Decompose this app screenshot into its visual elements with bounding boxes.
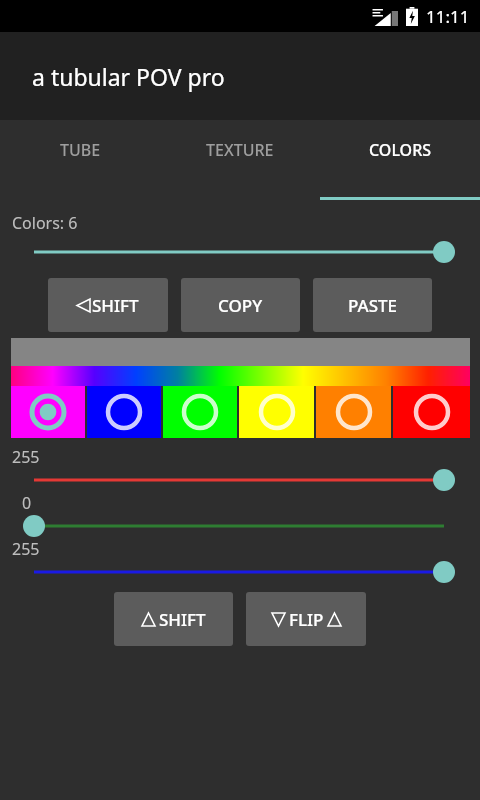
staticText: 11:11 (426, 5, 470, 28)
staticText: PASTE (348, 294, 398, 317)
button[interactable]: FLIP (246, 592, 366, 646)
button[interactable]: Color swatch 6 (393, 386, 470, 438)
button[interactable]: Color swatch 5 (316, 386, 391, 438)
staticText: SHIFT (92, 294, 139, 317)
staticText: 0 (22, 492, 32, 514)
button[interactable]: TUBE (0, 120, 160, 200)
staticText: COPY (218, 294, 263, 317)
button[interactable]: Color swatch 3 (163, 386, 237, 438)
staticText: a tubular POV pro (32, 61, 225, 92)
staticText: TEXTURE (206, 139, 274, 161)
button[interactable]: SHIFT (114, 592, 233, 646)
button[interactable]: COLORS (320, 120, 480, 200)
button[interactable]: Color swatch 1 (11, 386, 85, 438)
button[interactable]: COPY (181, 278, 300, 332)
button[interactable]: TEXTURE (160, 120, 320, 200)
button[interactable]: PASTE (313, 278, 432, 332)
staticText: FLIP (289, 608, 324, 631)
staticText: Colors: 6 (12, 212, 78, 234)
button[interactable]: SHIFT (48, 278, 168, 332)
staticText: 255 (12, 446, 40, 468)
button[interactable]: Color swatch 2 (87, 386, 161, 438)
button[interactable]: Slider (0, 468, 480, 492)
button[interactable]: Color swatch 4 (239, 386, 314, 438)
staticText: 255 (12, 538, 40, 560)
button[interactable]: Slider (0, 560, 480, 584)
staticText: TUBE (60, 139, 101, 161)
button[interactable]: Slider (0, 240, 480, 264)
button[interactable]: Slider (0, 514, 480, 538)
staticText: COLORS (369, 139, 432, 161)
staticText: SHIFT (159, 608, 206, 631)
